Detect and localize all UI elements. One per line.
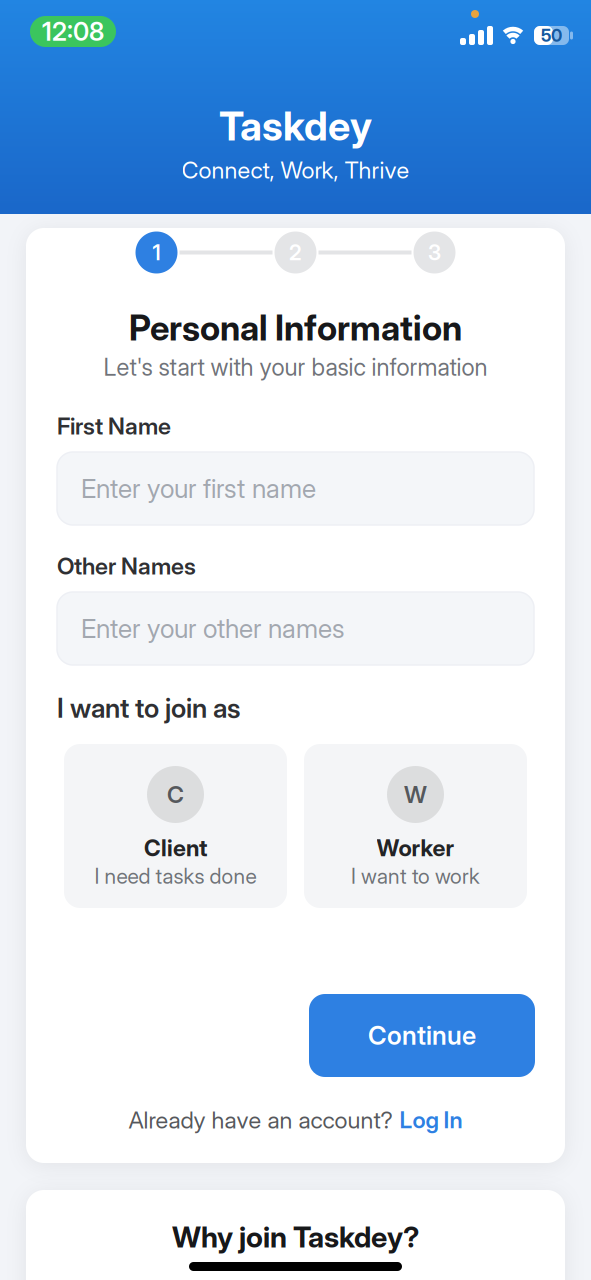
staticText: 2 <box>289 240 302 265</box>
staticText: Let's start with your basic information <box>103 353 487 381</box>
staticText: Other Names <box>57 552 196 580</box>
staticText: I need tasks done <box>94 863 256 889</box>
staticText: Personal Information <box>129 307 462 349</box>
button[interactable]: C <box>64 744 287 908</box>
staticText: Enter your other names <box>81 613 344 644</box>
button[interactable]: W <box>304 744 527 908</box>
staticText: Log In <box>399 1106 462 1134</box>
staticText: Why join Taskdey? <box>172 1219 419 1255</box>
staticText: Already have an account? <box>128 1106 392 1134</box>
button[interactable]: Continue <box>309 994 535 1077</box>
staticText: Enter your first name <box>81 473 316 504</box>
staticText: Continue <box>368 1020 476 1051</box>
staticText: 50 <box>541 25 562 46</box>
staticText: Taskdey <box>219 102 372 150</box>
staticText: First Name <box>57 412 171 440</box>
staticText: 1 <box>152 240 160 265</box>
button[interactable]: Enter your other names <box>57 592 534 665</box>
button[interactable]: Enter your first name <box>57 452 534 525</box>
staticText: I want to join as <box>57 692 240 724</box>
staticText: 12:08 <box>42 16 104 47</box>
staticText: Worker <box>376 834 454 862</box>
staticText: 3 <box>428 240 441 265</box>
staticText: C <box>167 780 184 809</box>
staticText: Connect, Work, Thrive <box>181 156 409 184</box>
staticText: I want to work <box>351 863 480 889</box>
button[interactable]: Log In <box>399 1106 462 1134</box>
staticText: W <box>404 780 427 809</box>
staticText: Client <box>144 834 207 862</box>
